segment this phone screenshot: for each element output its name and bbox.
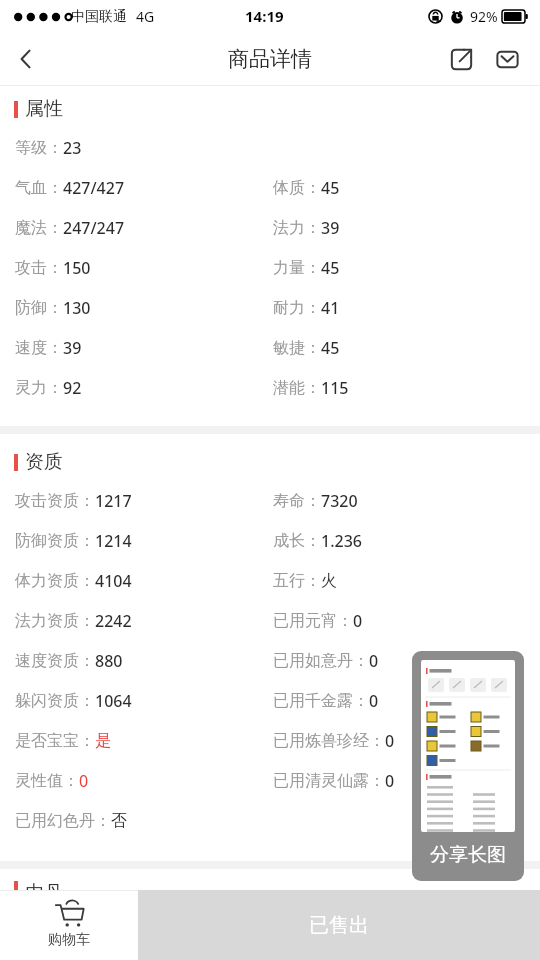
staticText: 已用元宵： <box>273 611 353 631</box>
staticText: 4G <box>136 7 155 26</box>
staticText: 150 <box>63 257 91 279</box>
staticText: 已用幻色丹： <box>15 811 111 831</box>
button[interactable]: 已售出 <box>138 890 540 960</box>
staticText: 247/247 <box>63 217 125 239</box>
staticText: 880 <box>95 650 123 672</box>
staticText: 分享长图 <box>430 843 506 867</box>
staticText: 中国联通 <box>71 8 127 26</box>
button[interactable]: Back <box>0 33 52 85</box>
staticText: 内丹 <box>25 881 63 890</box>
staticText: 速度资质： <box>15 651 95 671</box>
staticText: 已用清灵仙露： <box>273 771 385 791</box>
staticText: 已用如意丹： <box>273 651 369 671</box>
staticText: 0 <box>369 690 379 712</box>
staticText: 1217 <box>95 490 132 512</box>
staticText: 力量： <box>273 258 321 278</box>
button[interactable]: Share <box>438 36 484 82</box>
staticText: 1214 <box>95 530 132 552</box>
staticText: 14:19 <box>245 6 284 26</box>
staticText: 否 <box>111 811 127 831</box>
staticText: 防御资质： <box>15 531 95 551</box>
staticText: 气血： <box>15 178 63 198</box>
staticText: 39 <box>63 337 82 359</box>
staticText: 0 <box>369 650 379 672</box>
staticText: 1064 <box>95 690 132 712</box>
staticText: 敏捷： <box>273 338 321 358</box>
staticText: 已售出 <box>309 913 369 938</box>
staticText: 已用炼兽珍经： <box>273 731 385 751</box>
staticText: 属性 <box>25 97 63 121</box>
staticText: 是 <box>95 731 111 751</box>
staticText: 法力： <box>273 218 321 238</box>
staticText: 115 <box>321 377 349 399</box>
staticText: 法力资质： <box>15 611 95 631</box>
staticText: 体力资质： <box>15 571 95 591</box>
staticText: 潜能： <box>273 378 321 398</box>
staticText: 等级： <box>15 138 63 158</box>
button[interactable]: 购物车 <box>0 890 138 960</box>
staticText: 攻击： <box>15 258 63 278</box>
staticText: 成长： <box>273 531 321 551</box>
staticText: 0 <box>385 770 395 792</box>
staticText: 1.236 <box>321 530 362 552</box>
staticText: 45 <box>321 177 340 199</box>
staticText: 防御： <box>15 298 63 318</box>
staticText: 0 <box>79 770 89 792</box>
staticText: 已用千金露： <box>273 691 369 711</box>
staticText: 0 <box>353 610 363 632</box>
staticText: 427/427 <box>63 177 125 199</box>
staticText: 45 <box>321 257 340 279</box>
staticText: 资质 <box>25 450 63 474</box>
staticText: 92% <box>470 7 498 26</box>
staticText: 41 <box>321 297 340 319</box>
staticText: 速度： <box>15 338 63 358</box>
staticText: 躲闪资质： <box>15 691 95 711</box>
staticText: 92 <box>63 377 82 399</box>
staticText: 39 <box>321 217 340 239</box>
staticText: 是否宝宝： <box>15 731 95 751</box>
staticText: 130 <box>63 297 91 319</box>
staticText: 商品详情 <box>228 46 312 72</box>
staticText: 23 <box>63 137 82 159</box>
staticText: 0 <box>385 730 395 752</box>
staticText: 灵性值： <box>15 771 79 791</box>
staticText: 火 <box>321 571 337 591</box>
staticText: 魔法： <box>15 218 63 238</box>
staticText: 寿命： <box>273 491 321 511</box>
staticText: 7320 <box>321 490 358 512</box>
button[interactable]: Messages <box>484 36 530 82</box>
staticText: 2242 <box>95 610 132 632</box>
staticText: 耐力： <box>273 298 321 318</box>
staticText: 体质： <box>273 178 321 198</box>
button[interactable]: 分享长图 <box>412 651 524 881</box>
staticText: 4104 <box>95 570 132 592</box>
staticText: 购物车 <box>48 931 90 949</box>
staticText: 五行： <box>273 571 321 591</box>
staticText: 45 <box>321 337 340 359</box>
staticText: 攻击资质： <box>15 491 95 511</box>
staticText: 灵力： <box>15 378 63 398</box>
